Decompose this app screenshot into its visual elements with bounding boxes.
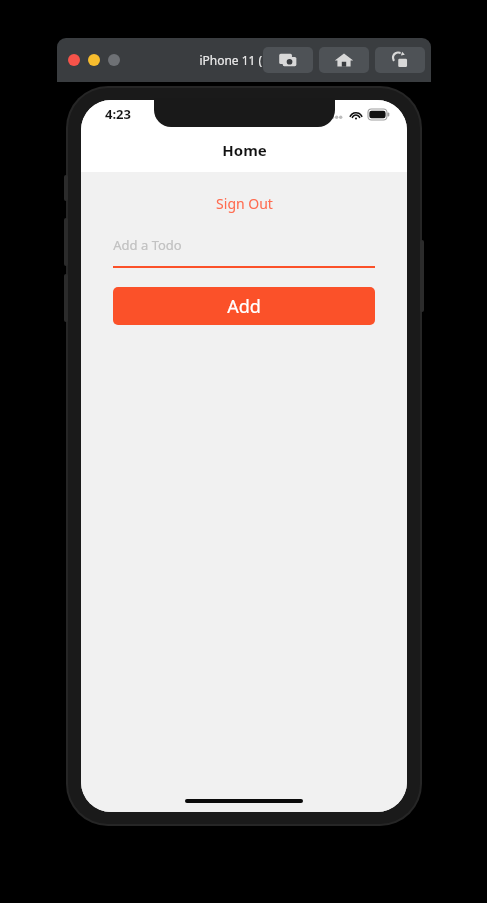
button[interactable]: Screenshot [263, 47, 313, 73]
staticText: Add a Todo [113, 236, 182, 254]
button[interactable]: Add [113, 287, 375, 325]
button[interactable]: Zoom [108, 54, 120, 66]
button[interactable]: Rotate [375, 47, 425, 73]
staticText: Add [227, 294, 261, 319]
staticText: 4:23 [105, 105, 131, 123]
button[interactable]: Add a Todo [113, 232, 375, 268]
button[interactable]: Close [68, 54, 80, 66]
button[interactable]: Sign Out [81, 190, 407, 216]
button[interactable]: Home [319, 47, 369, 73]
button[interactable]: Minimize [88, 54, 100, 66]
button[interactable]: Volume up [64, 218, 68, 266]
button[interactable]: Silent switch [64, 175, 68, 201]
staticText: Home [222, 140, 267, 160]
staticText: Sign Out [216, 194, 273, 213]
staticText: iPhone 11 (13.6) [199, 52, 290, 68]
button[interactable]: Volume down [64, 274, 68, 322]
